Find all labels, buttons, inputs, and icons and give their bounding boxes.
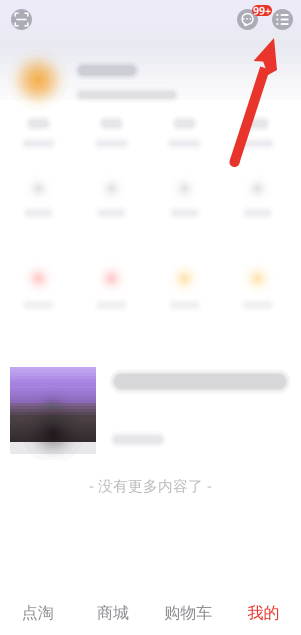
button[interactable] <box>75 261 148 312</box>
button[interactable] <box>148 261 221 312</box>
button[interactable] <box>2 261 75 312</box>
button[interactable] <box>0 361 301 460</box>
button[interactable] <box>2 173 75 220</box>
button[interactable]: 头像 <box>8 52 68 108</box>
button[interactable]: 更多 <box>272 9 293 30</box>
button[interactable] <box>148 173 221 220</box>
staticText: 我的 <box>247 603 279 623</box>
button[interactable]: 扫一扫 <box>11 9 32 30</box>
staticText: 商城 <box>97 603 129 623</box>
staticText: 点淘 <box>22 603 54 623</box>
button[interactable]: 购物车 <box>150 591 226 635</box>
button[interactable]: 点淘 <box>0 591 75 635</box>
button[interactable]: 商城 <box>75 591 150 635</box>
button[interactable] <box>2 115 75 151</box>
button[interactable]: 我的 <box>226 591 301 635</box>
button[interactable] <box>75 173 148 220</box>
staticText: - 没有更多内容了 - <box>89 476 212 495</box>
button[interactable]: 消息 <box>237 9 258 30</box>
button[interactable] <box>148 115 221 151</box>
button[interactable] <box>221 115 294 151</box>
button[interactable] <box>221 261 294 312</box>
button[interactable] <box>75 115 148 151</box>
staticText: 购物车 <box>164 603 212 623</box>
button[interactable] <box>221 173 294 220</box>
staticText: 99+ <box>253 3 271 18</box>
